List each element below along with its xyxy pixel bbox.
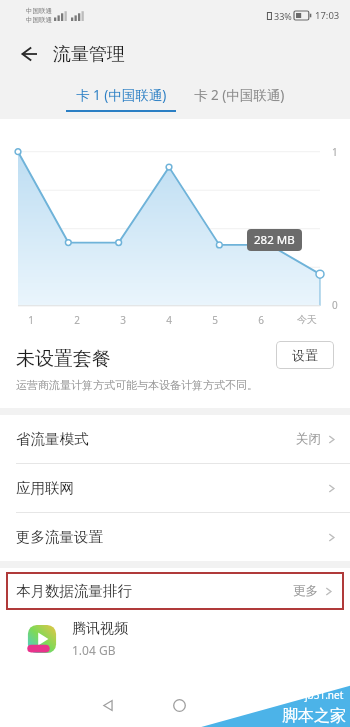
staticText: 运营商流量计算方式可能与本设备计算方式不同。 [16, 378, 258, 392]
staticText: 1 [332, 145, 338, 159]
staticText: 2 [74, 313, 80, 327]
staticText: 本月数据流量排行 [16, 582, 132, 600]
button[interactable]: 本月数据流量排行 [0, 568, 350, 613]
staticText: 设置 [292, 347, 318, 363]
staticText: 中国联通 [26, 16, 52, 24]
staticText: 0 [332, 298, 338, 312]
staticText: 流量管理 [53, 43, 125, 66]
button[interactable]: 省流量模式 [0, 415, 350, 463]
staticText: 今天 [297, 313, 317, 326]
staticText: 未设置套餐 [16, 347, 111, 371]
staticText: 更多流量设置 [16, 528, 103, 546]
staticText: 中国联通 [26, 7, 52, 15]
button[interactable]: 卡 2 (中国联通) [194, 86, 285, 104]
staticText: jb51.net [305, 688, 344, 702]
button[interactable]: 返回 [88, 686, 126, 724]
button[interactable]: 返回 [8, 34, 48, 74]
button[interactable]: 设置 [276, 341, 334, 369]
button[interactable]: 腾讯视频 [0, 613, 350, 665]
staticText: 脚本之家 [282, 706, 346, 726]
staticText: 5 [212, 313, 218, 327]
staticText: 282 MB [254, 232, 295, 248]
staticText: 省流量模式 [16, 430, 89, 448]
staticText: 卡 2 (中国联通) [194, 86, 285, 104]
staticText: 1 [28, 313, 34, 327]
staticText: 33% [274, 10, 292, 22]
staticText: 6 [258, 313, 264, 327]
staticText: 卡 1 (中国联通) [76, 86, 167, 104]
staticText: 应用联网 [16, 479, 74, 497]
staticText: 4 [166, 313, 172, 327]
button[interactable]: 应用联网 [0, 464, 350, 512]
button[interactable]: 主页 [160, 686, 198, 724]
staticText: 更多 [293, 583, 318, 599]
button[interactable]: 更多流量设置 [0, 513, 350, 561]
button[interactable]: 卡 1 (中国联通) [66, 86, 176, 112]
staticText: 腾讯视频 [72, 620, 128, 638]
staticText: 3 [120, 313, 126, 327]
staticText: 关闭 [296, 431, 321, 447]
staticText: 17:03 [315, 9, 340, 22]
staticText: 1.04 GB [72, 642, 116, 658]
